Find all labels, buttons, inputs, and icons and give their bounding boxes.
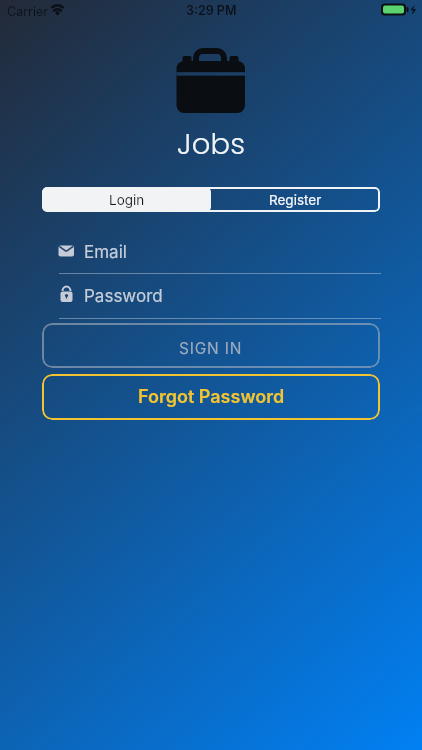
staticText: Carrier	[7, 4, 48, 19]
staticText: SIGN IN	[179, 339, 243, 358]
staticText: Register	[269, 192, 322, 208]
button[interactable]: Register	[211, 187, 380, 212]
button[interactable]: Forgot Password	[42, 374, 380, 420]
button[interactable]: Login	[42, 187, 211, 212]
staticText: Forgot Password	[138, 386, 285, 408]
button[interactable]: Password	[59, 278, 381, 314]
button[interactable]: Email	[59, 234, 381, 270]
staticText: Email	[84, 242, 127, 263]
button[interactable]: SIGN IN	[42, 323, 380, 368]
staticText: 3:29 PM	[186, 3, 237, 18]
staticText: Jobs	[177, 124, 246, 165]
staticText: Login	[109, 192, 145, 208]
staticText: Password	[84, 286, 163, 307]
